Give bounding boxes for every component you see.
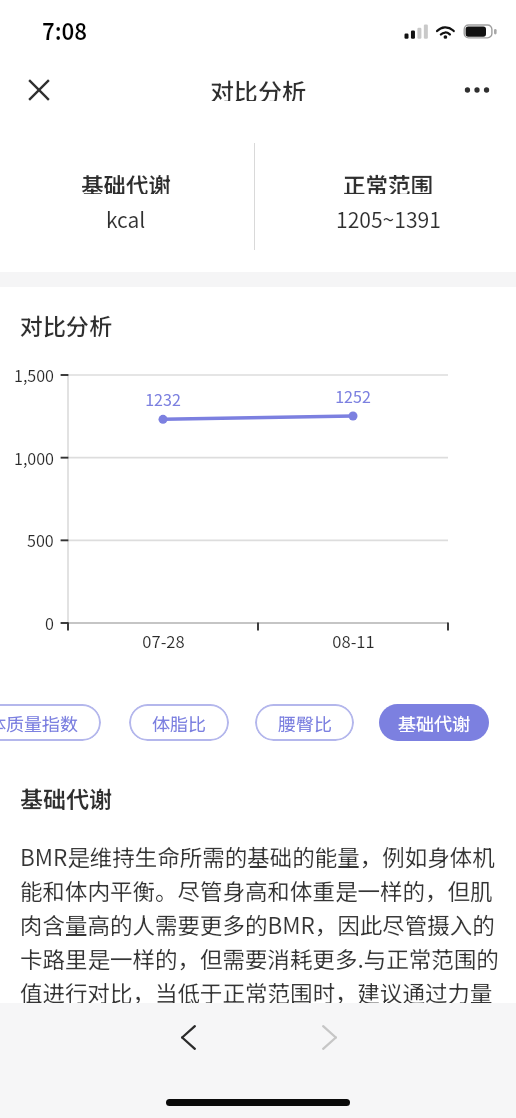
button[interactable]: 身体质量指数 [0,704,101,741]
staticText: 腰臀比 [278,710,332,736]
staticText: kcal [106,204,146,228]
button[interactable]: 体脂比 [129,704,229,741]
staticText: 08-11 [332,629,375,653]
staticText: BMR是维持生命所需的基础的能量，例如身体机能和体内平衡。尽管身高和体重是一样的… [20,840,500,1042]
staticText: 体脂比 [152,710,206,736]
staticText: 基础代谢 [20,781,112,814]
staticText: 1232 [145,387,181,410]
staticText: 07-28 [142,629,185,653]
staticText: 对比分析 [20,308,112,341]
staticText: 基础代谢 [398,710,470,736]
button[interactable]: Previous [164,1013,212,1061]
staticText: 1252 [335,384,371,407]
staticText: 1205~1391 [336,204,441,228]
staticText: 基础代谢 [81,168,172,194]
button[interactable]: 腰臀比 [255,704,354,741]
staticText: 7:08 [42,14,88,44]
button[interactable]: Next [305,1013,353,1061]
staticText: 1,500 [14,363,54,386]
staticText: 正常范围 [343,168,434,194]
staticText: 0 [45,611,54,634]
staticText: 对比分析 [210,73,306,101]
button[interactable]: Close [17,68,61,112]
button[interactable]: More options [455,68,499,112]
staticText: 身体质量指数 [0,710,78,736]
button[interactable]: 基础代谢 [379,704,489,741]
staticText: 500 [27,528,54,551]
staticText: 1,000 [14,446,54,469]
